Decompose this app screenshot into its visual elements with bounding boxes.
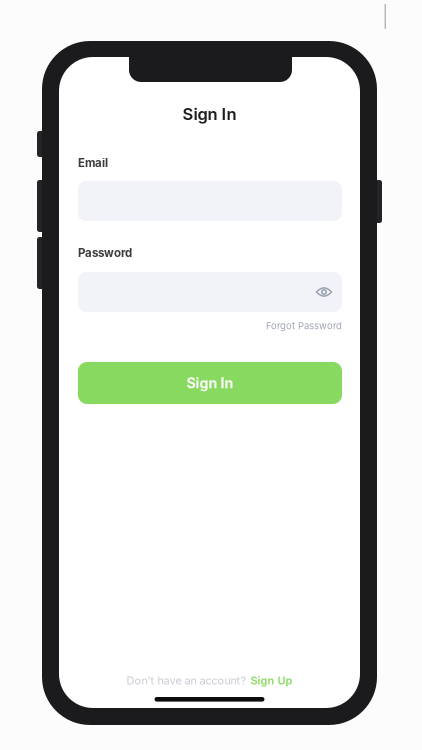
staticText: Sign Up	[250, 674, 292, 687]
staticText: Forgot Password	[266, 320, 342, 331]
button[interactable]: Show password	[306, 272, 342, 312]
button[interactable]: Sign In	[78, 362, 342, 404]
staticText: Sign In	[186, 374, 233, 391]
button[interactable]: Sign Up	[250, 674, 292, 687]
staticText: Don’t have an account?	[126, 674, 246, 687]
staticText: Email	[78, 156, 108, 170]
button[interactable]: Forgot Password	[266, 320, 342, 331]
staticText: Password	[78, 246, 132, 260]
staticText: Sign In	[182, 104, 236, 124]
